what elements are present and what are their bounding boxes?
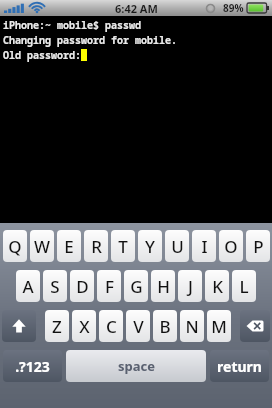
staticText: T [118,235,128,258]
button[interactable]: D [70,270,94,302]
button[interactable]: .?123 [3,350,62,382]
staticText: 6:42 AM [115,1,158,16]
staticText: P [253,235,264,258]
staticText: C [106,315,117,338]
staticText: G [130,275,143,298]
button[interactable]: B [153,310,177,342]
button[interactable]: C [99,310,123,342]
staticText: H [157,275,170,298]
button[interactable]: V [126,310,150,342]
staticText: U [171,235,184,258]
button[interactable]: N [180,310,204,342]
button[interactable]: A [16,270,40,302]
button[interactable]: Backspace [240,310,270,342]
staticText: space [118,357,155,375]
button[interactable]: space [66,350,206,382]
button[interactable]: P [246,230,270,262]
button[interactable]: iPhone:~ mobile$ passwd [0,16,272,223]
staticText: D [76,275,89,298]
staticText: M [211,315,227,338]
staticText: Z [52,315,62,338]
staticText: Old password: [3,48,81,62]
button[interactable]: H [151,270,175,302]
button[interactable]: G [124,270,148,302]
staticText: N [185,315,199,338]
staticText: V [133,315,144,338]
staticText: W [34,235,50,258]
button[interactable]: Y [138,230,162,262]
staticText: F [105,275,114,298]
button[interactable]: K [205,270,229,302]
button[interactable]: Z [45,310,69,342]
staticText: I [201,235,208,258]
staticText: Y [145,235,155,258]
button[interactable]: M [207,310,231,342]
staticText: 89% [223,1,244,15]
staticText: A [22,275,34,298]
staticText: K [212,275,223,298]
staticText: R [91,235,102,258]
button[interactable]: Q [3,230,27,262]
button[interactable]: F [97,270,121,302]
button[interactable]: O [219,230,243,262]
button[interactable]: Shift [2,310,36,342]
button[interactable]: E [57,230,81,262]
staticText: iPhone:~ mobile$ passwd [3,18,141,32]
staticText: E [64,235,74,258]
staticText: X [79,315,90,338]
staticText: Changing password for mobile. [3,33,177,47]
staticText: return [217,357,262,376]
staticText: O [224,235,238,258]
staticText: J [188,275,193,298]
button[interactable]: I [192,230,216,262]
staticText: L [239,275,249,298]
button[interactable]: W [30,230,54,262]
button[interactable]: R [84,230,108,262]
staticText: .?123 [15,357,50,376]
button[interactable]: J [178,270,202,302]
staticText: Q [8,235,22,258]
button[interactable]: return [210,350,269,382]
button[interactable]: S [43,270,67,302]
button[interactable]: T [111,230,135,262]
button[interactable]: L [232,270,256,302]
button[interactable]: U [165,230,189,262]
staticText: B [159,315,171,338]
staticText: S [50,275,60,298]
button[interactable]: X [72,310,96,342]
